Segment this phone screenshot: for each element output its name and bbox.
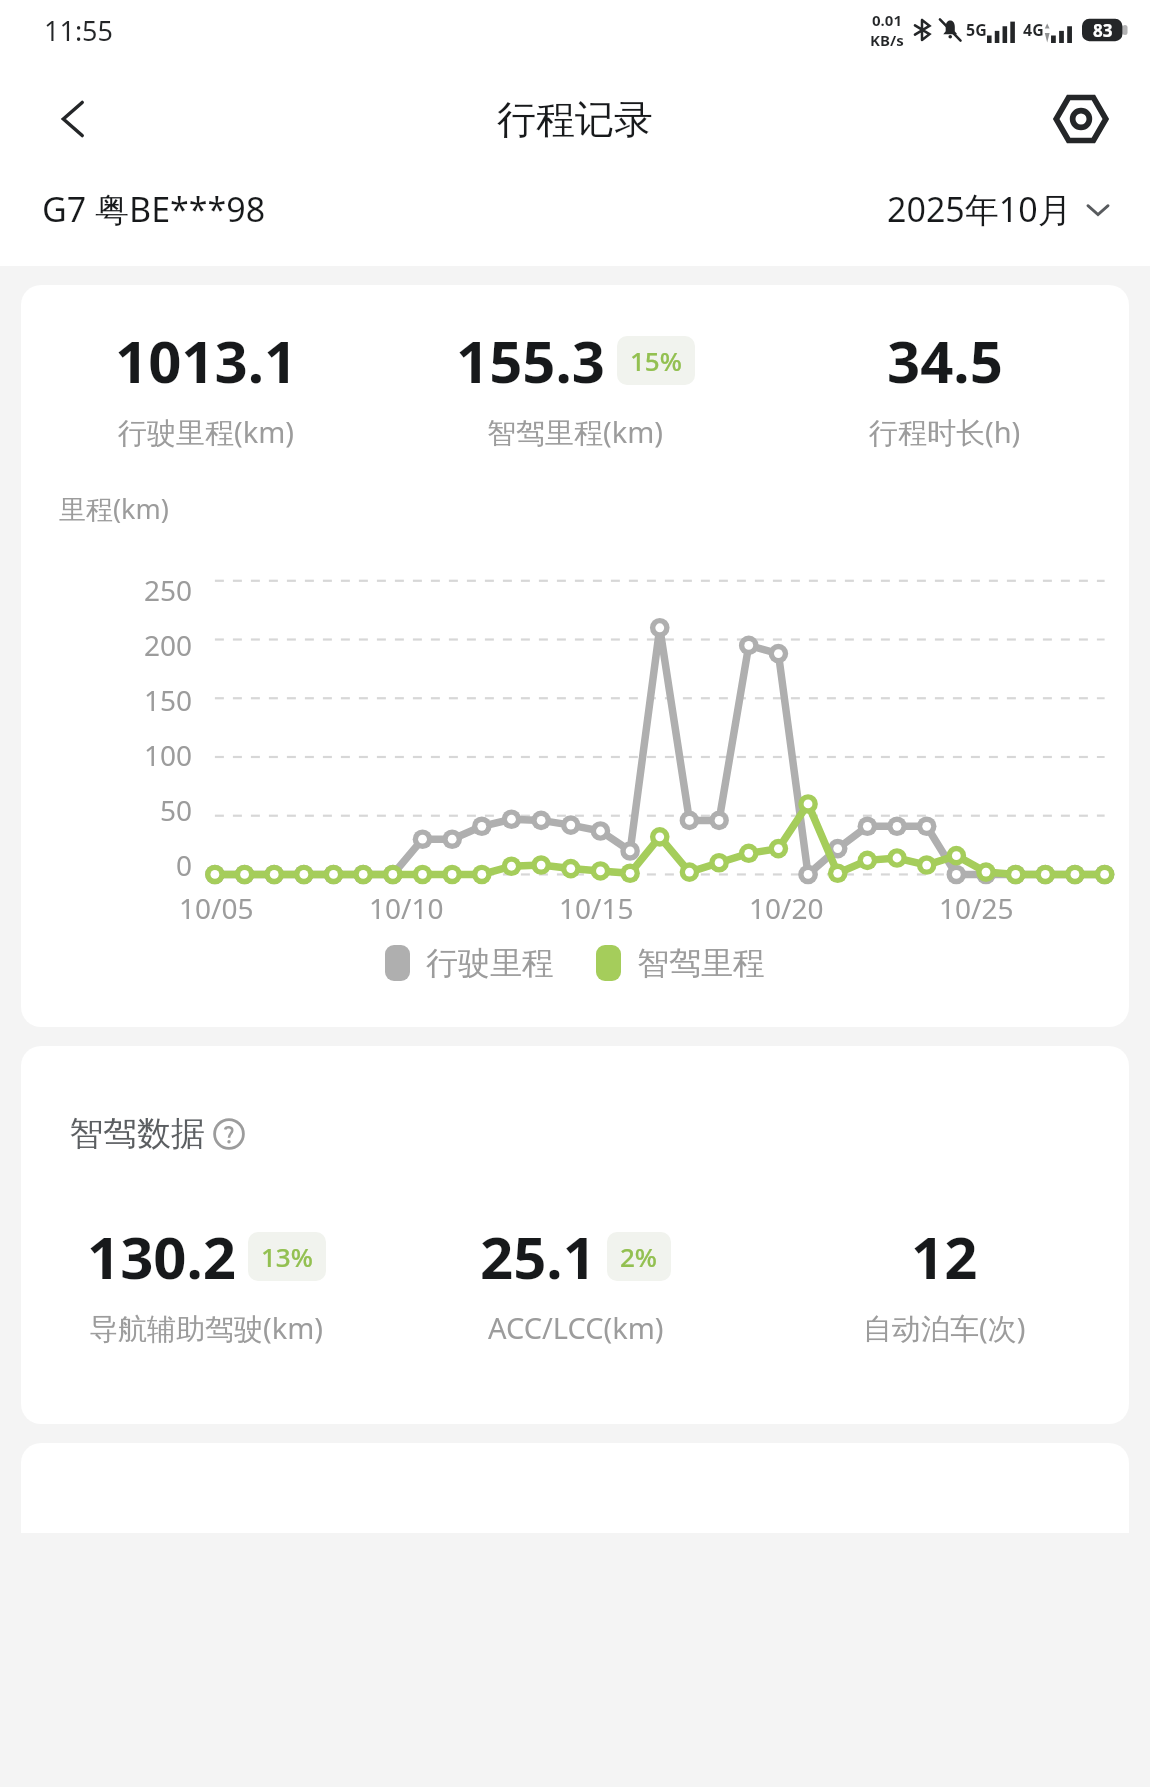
staticText: 250 <box>144 571 193 609</box>
staticText: G7 粤BE***98 <box>42 186 266 232</box>
staticText: 1013.1 <box>115 321 298 400</box>
staticText: 10/15 <box>559 889 634 927</box>
staticText: 行程记录 <box>497 95 653 144</box>
staticText: 13% <box>261 1239 313 1274</box>
staticText: 10/20 <box>749 889 824 927</box>
staticText: 0.01 <box>872 10 902 30</box>
staticText: KB/s <box>870 30 904 50</box>
button[interactable]: Settings <box>1048 86 1114 152</box>
staticText: 4G <box>1023 19 1044 41</box>
staticText: 里程(km) <box>59 490 169 527</box>
staticText: ACC/LCC(km) <box>488 1308 664 1347</box>
staticText: 15% <box>630 343 682 378</box>
staticText: 50 <box>160 791 193 829</box>
staticText: 智驾里程(km) <box>487 412 664 452</box>
staticText: 智驾数据 <box>69 1112 205 1155</box>
staticText: 150 <box>144 681 193 719</box>
staticText: 25.1 <box>480 1217 596 1296</box>
staticText: 行程时长(h) <box>869 412 1021 452</box>
staticText: 10/10 <box>369 889 444 927</box>
staticText: 5G <box>966 19 987 41</box>
staticText: 130.2 <box>87 1217 237 1296</box>
staticText: 155.3 <box>456 321 606 400</box>
staticText: 2% <box>620 1239 658 1274</box>
staticText: 11:55 <box>44 12 114 49</box>
staticText: 导航辅助驾驶(km) <box>89 1308 324 1348</box>
staticText: 100 <box>144 736 193 774</box>
staticText: 10/05 <box>179 889 254 927</box>
staticText: 智驾里程 <box>637 943 765 983</box>
button[interactable]: 智驾数据 <box>65 1108 249 1159</box>
button[interactable]: 2025年10月 <box>883 178 1116 240</box>
button[interactable]: Back <box>42 88 104 150</box>
staticText: 行驶里程 <box>426 943 554 983</box>
staticText: 200 <box>144 626 193 664</box>
staticText: 34.5 <box>887 321 1003 400</box>
staticText: 10/25 <box>939 889 1014 927</box>
staticText: 12 <box>911 1217 978 1296</box>
staticText: 行驶里程(km) <box>118 412 295 452</box>
staticText: 自动泊车(次) <box>863 1308 1026 1348</box>
staticText: 83 <box>1093 19 1113 42</box>
staticText: 2025年10月 <box>887 186 1072 232</box>
staticText: 0 <box>176 846 193 884</box>
